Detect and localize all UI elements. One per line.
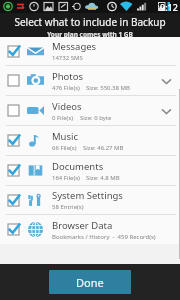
- button[interactable]: Checked: [0, 156, 180, 185]
- button[interactable]: Checked: [7, 134, 20, 147]
- staticText: Size: 0 byte: [80, 114, 112, 122]
- staticText: Done: [76, 275, 104, 290]
- button[interactable]: Expand Videos: [158, 103, 174, 119]
- staticText: 9:12: [160, 1, 178, 13]
- button[interactable]: Done: [49, 270, 131, 294]
- button[interactable]: Unchecked: [7, 104, 20, 117]
- staticText: Documents: [52, 160, 104, 173]
- button[interactable]: Checked: [7, 194, 20, 207]
- button[interactable]: Checked: [7, 223, 20, 236]
- staticText: Size: 550.38 MB: [86, 84, 130, 92]
- button[interactable]: Unchecked: [7, 74, 20, 87]
- staticText: System Settings: [52, 189, 123, 202]
- staticText: Size: 4.8 MB: [86, 174, 120, 182]
- staticText: Bookmarks / History - 459 Record(s): [52, 233, 156, 241]
- button[interactable]: Checked: [0, 126, 180, 155]
- staticText: 76: [158, 3, 164, 10]
- staticText: Music: [52, 130, 79, 143]
- staticText: Videos: [52, 100, 82, 113]
- button[interactable]: Checked: [7, 164, 20, 177]
- button[interactable]: Checked: [0, 37, 180, 65]
- staticText: 0 File(s): [52, 114, 74, 122]
- staticText: Size: 46.27 MB: [83, 144, 124, 152]
- staticText: Messages: [52, 40, 97, 53]
- button[interactable]: Expand Photos: [158, 73, 174, 89]
- staticText: Browser Data: [52, 219, 113, 232]
- staticText: Select what to include in Backup: [14, 15, 166, 29]
- staticText: 164 File(s): [52, 174, 80, 182]
- button[interactable]: Checked: [0, 186, 180, 214]
- staticText: 66 File(s): [52, 144, 77, 152]
- staticText: 58 Entrie(s): [52, 203, 84, 211]
- staticText: Your plan comes with 1 GB: [47, 30, 133, 37]
- button[interactable]: Checked: [0, 215, 180, 244]
- button[interactable]: Unchecked: [0, 96, 180, 125]
- button[interactable]: Checked: [7, 45, 20, 58]
- staticText: 476 File(s): [52, 84, 80, 92]
- staticText: Photos: [52, 70, 84, 83]
- button[interactable]: Unchecked: [0, 66, 180, 95]
- staticText: 14732 SMS: [52, 54, 83, 62]
